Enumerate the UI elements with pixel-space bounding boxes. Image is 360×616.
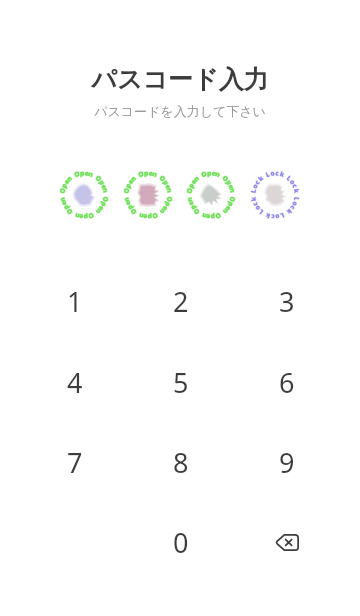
button[interactable]: 9 xyxy=(234,422,340,502)
button[interactable]: 5 xyxy=(128,342,234,422)
button[interactable]: 8 xyxy=(128,422,234,502)
button[interactable] xyxy=(122,169,174,221)
staticText: 5 xyxy=(173,364,189,401)
button[interactable]: 0 xyxy=(128,502,234,582)
button[interactable]: 6 xyxy=(234,342,340,422)
button[interactable]: 4 xyxy=(22,342,128,422)
button[interactable] xyxy=(185,169,237,221)
button[interactable]: 3 xyxy=(234,261,340,342)
staticText: 4 xyxy=(67,364,83,401)
staticText: 7 xyxy=(67,444,83,481)
button[interactable]: 1 xyxy=(22,261,128,342)
button[interactable]: Backspace xyxy=(234,502,340,582)
staticText: 2 xyxy=(173,283,189,320)
staticText: パスコードを入力して下さい xyxy=(0,103,360,119)
button[interactable]: 2 xyxy=(128,261,234,342)
staticText: 9 xyxy=(279,444,295,481)
button[interactable] xyxy=(249,169,301,221)
staticText: 8 xyxy=(173,444,189,481)
staticText: 6 xyxy=(279,364,295,401)
button[interactable]: 7 xyxy=(22,422,128,502)
staticText: 3 xyxy=(279,283,295,320)
staticText: 0 xyxy=(173,524,189,561)
button[interactable] xyxy=(58,169,110,221)
staticText: 1 xyxy=(67,283,83,320)
staticText: パスコード入力 xyxy=(0,64,360,95)
other: Backspace xyxy=(275,534,299,551)
